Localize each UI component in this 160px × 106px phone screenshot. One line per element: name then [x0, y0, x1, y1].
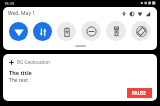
- staticText: The title: [9, 69, 32, 76]
- staticText: The text: [9, 77, 28, 84]
- staticText: 18:39: [4, 1, 15, 6]
- button[interactable]: Auto rotate: [131, 21, 151, 41]
- staticText: PAUSE: [132, 90, 147, 96]
- button[interactable]: BG Geolocation: [3, 54, 157, 101]
- staticText: BG Geolocation: [17, 59, 50, 65]
- staticText: Wed, May 1: [8, 10, 36, 17]
- button[interactable]: Battery saver: [57, 22, 76, 41]
- button[interactable]: Do not disturb: [81, 21, 101, 41]
- button[interactable]: PAUSE: [127, 88, 152, 98]
- button[interactable]: Flashlight: [106, 21, 126, 41]
- button[interactable]: Internet: [9, 22, 28, 41]
- button[interactable]: Mobile data: [33, 22, 52, 41]
